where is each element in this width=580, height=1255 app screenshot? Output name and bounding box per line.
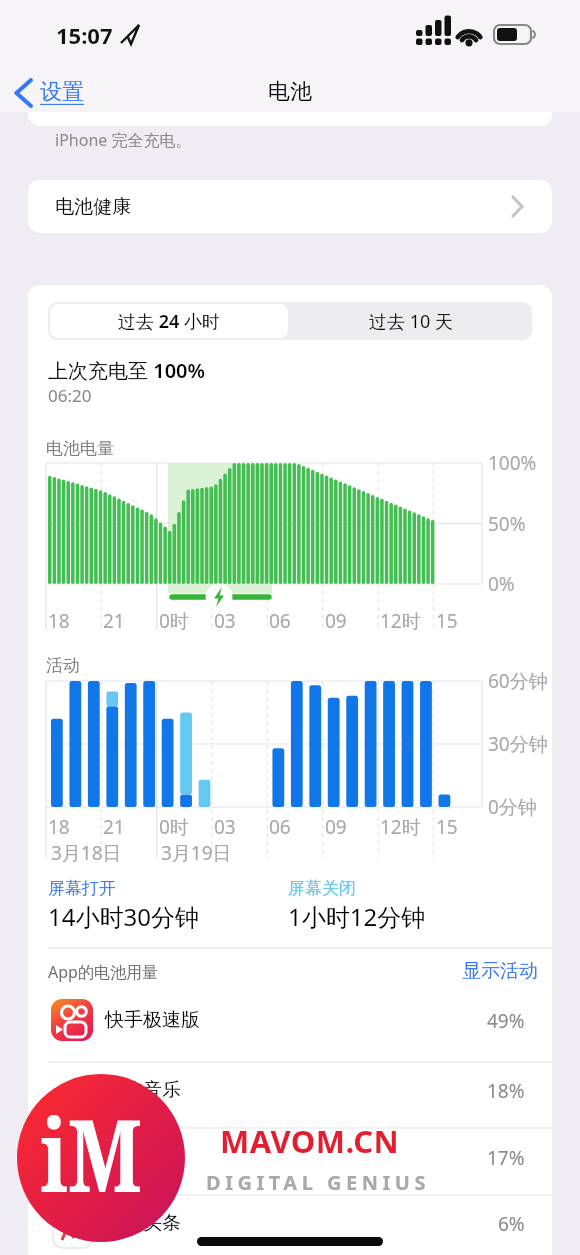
staticText: 电池 — [268, 78, 312, 106]
staticText: 03 — [214, 608, 236, 634]
staticText: 0时 — [159, 814, 189, 840]
staticText: 电池电量 — [46, 438, 114, 459]
staticText: 30分钟 — [488, 731, 548, 757]
staticText: 0分钟 — [488, 794, 537, 820]
staticText: 17% — [487, 1145, 525, 1171]
staticText: 0时 — [159, 608, 189, 634]
staticText: 21 — [103, 814, 125, 840]
staticText: 过去 24 小时 — [118, 309, 220, 334]
staticText: 06 — [269, 608, 291, 634]
staticText: 1小时12分钟 — [288, 900, 426, 933]
staticText: iPhone 完全充电。 — [55, 129, 192, 151]
staticText: 3月18日 — [51, 840, 122, 866]
staticText: 09 — [325, 814, 347, 840]
staticText: 显示活动 — [462, 959, 538, 983]
staticText: 100% — [488, 450, 537, 476]
button[interactable]: 过去 24 小时 — [50, 304, 288, 338]
staticText: 6% — [498, 1211, 525, 1237]
staticText: 过去 10 天 — [369, 309, 453, 334]
staticText: 上次充电至 100% — [48, 357, 206, 384]
staticText: 49% — [487, 1008, 525, 1034]
button[interactable] — [28, 180, 552, 233]
staticText: 电池健康 — [55, 195, 131, 219]
staticText: DIGITAL GENIUS — [206, 1169, 430, 1196]
staticText: 18% — [487, 1078, 525, 1104]
staticText: 0% — [488, 571, 515, 597]
staticText: 快手极速版 — [105, 1008, 200, 1032]
staticText: 21 — [103, 608, 125, 634]
staticText: 15 — [436, 814, 458, 840]
staticText: 18 — [48, 608, 70, 634]
staticText: 12时 — [380, 608, 421, 634]
staticText: 06:20 — [48, 384, 92, 407]
staticText: iM — [40, 1085, 143, 1221]
staticText: 3月19日 — [161, 840, 232, 866]
button[interactable]: 过去 10 天 — [290, 304, 532, 338]
button[interactable] — [28, 995, 552, 1062]
staticText: 活动 — [46, 655, 80, 676]
staticText: App的电池用量 — [48, 961, 158, 983]
staticText: 14小时30分钟 — [48, 900, 199, 933]
staticText: 18 — [48, 814, 70, 840]
staticText: 屏幕关闭 — [288, 878, 356, 899]
staticText: 今日头条 — [105, 1211, 181, 1235]
staticText: 屏幕打开 — [48, 878, 116, 899]
staticText: 60分钟 — [488, 668, 548, 694]
button[interactable] — [28, 1062, 552, 1128]
staticText: 12时 — [380, 814, 421, 840]
staticText: 15:07 — [56, 20, 113, 50]
button[interactable] — [460, 955, 550, 985]
staticText: 酷狗音乐 — [105, 1078, 181, 1102]
staticText: MAVOM.CN — [220, 1120, 400, 1162]
staticText: 09 — [325, 608, 347, 634]
staticText: 03 — [214, 814, 236, 840]
button[interactable] — [28, 1128, 552, 1195]
button[interactable] — [28, 1195, 552, 1255]
staticText: 15 — [436, 608, 458, 634]
staticText: 06 — [269, 814, 291, 840]
staticText: 50% — [488, 511, 526, 537]
staticText: 微信 — [105, 1145, 143, 1169]
